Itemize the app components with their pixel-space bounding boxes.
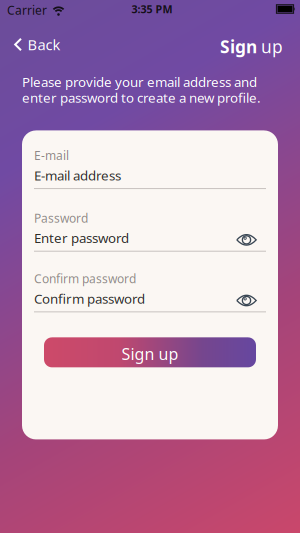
staticText: Please provide your email address and en… <box>22 73 261 106</box>
staticText: E-mail <box>34 147 69 163</box>
textField[interactable]: Enter password <box>34 229 236 247</box>
staticText: up <box>261 35 283 58</box>
staticText: Confirm password <box>34 271 136 287</box>
staticText: Enter password <box>34 229 129 247</box>
button[interactable]: Show password <box>236 291 266 305</box>
staticText: Carrier <box>7 2 47 18</box>
button[interactable]: Back <box>14 35 60 54</box>
textField[interactable]: Confirm password <box>34 290 236 307</box>
staticText: Password <box>34 210 88 226</box>
staticText: 3:35 PM <box>131 2 172 16</box>
staticText: E-mail address <box>34 166 121 184</box>
button[interactable]: Sign up <box>44 337 256 367</box>
staticText: Back <box>27 35 60 54</box>
staticText: Sign <box>220 35 257 58</box>
staticText: Sign up <box>121 343 178 364</box>
textField[interactable]: E-mail address <box>34 166 266 184</box>
button[interactable]: Show password <box>236 231 266 245</box>
staticText: Confirm password <box>34 290 145 307</box>
